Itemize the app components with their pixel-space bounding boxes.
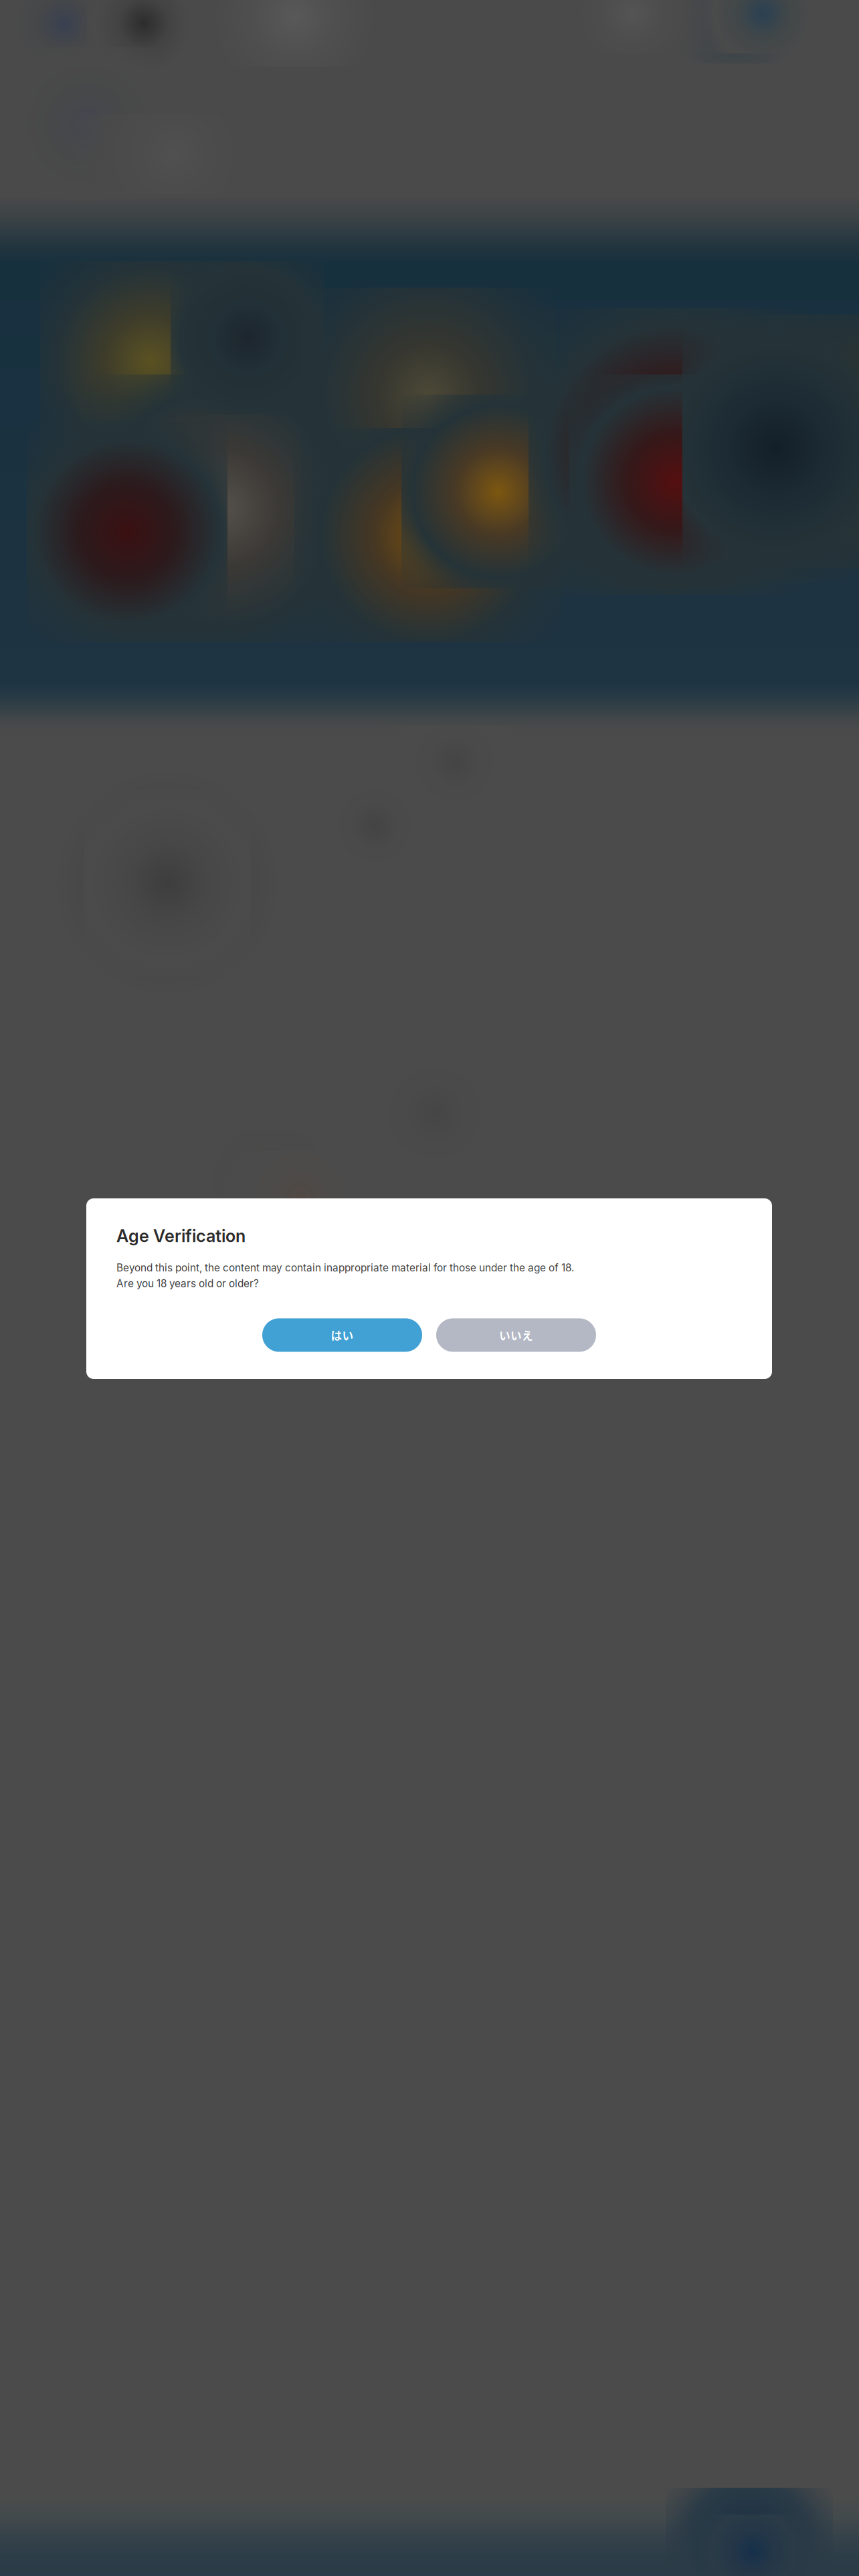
staticText: Beyond this point, the content may conta… (116, 1261, 574, 1274)
staticText: いいえ (499, 1327, 533, 1343)
staticText: Age Verification (116, 1226, 246, 1246)
button[interactable]: いいえ (436, 1318, 596, 1352)
staticText: Are you 18 years old or older? (116, 1277, 259, 1290)
button[interactable]: はい (262, 1318, 422, 1352)
staticText: はい (331, 1327, 354, 1343)
